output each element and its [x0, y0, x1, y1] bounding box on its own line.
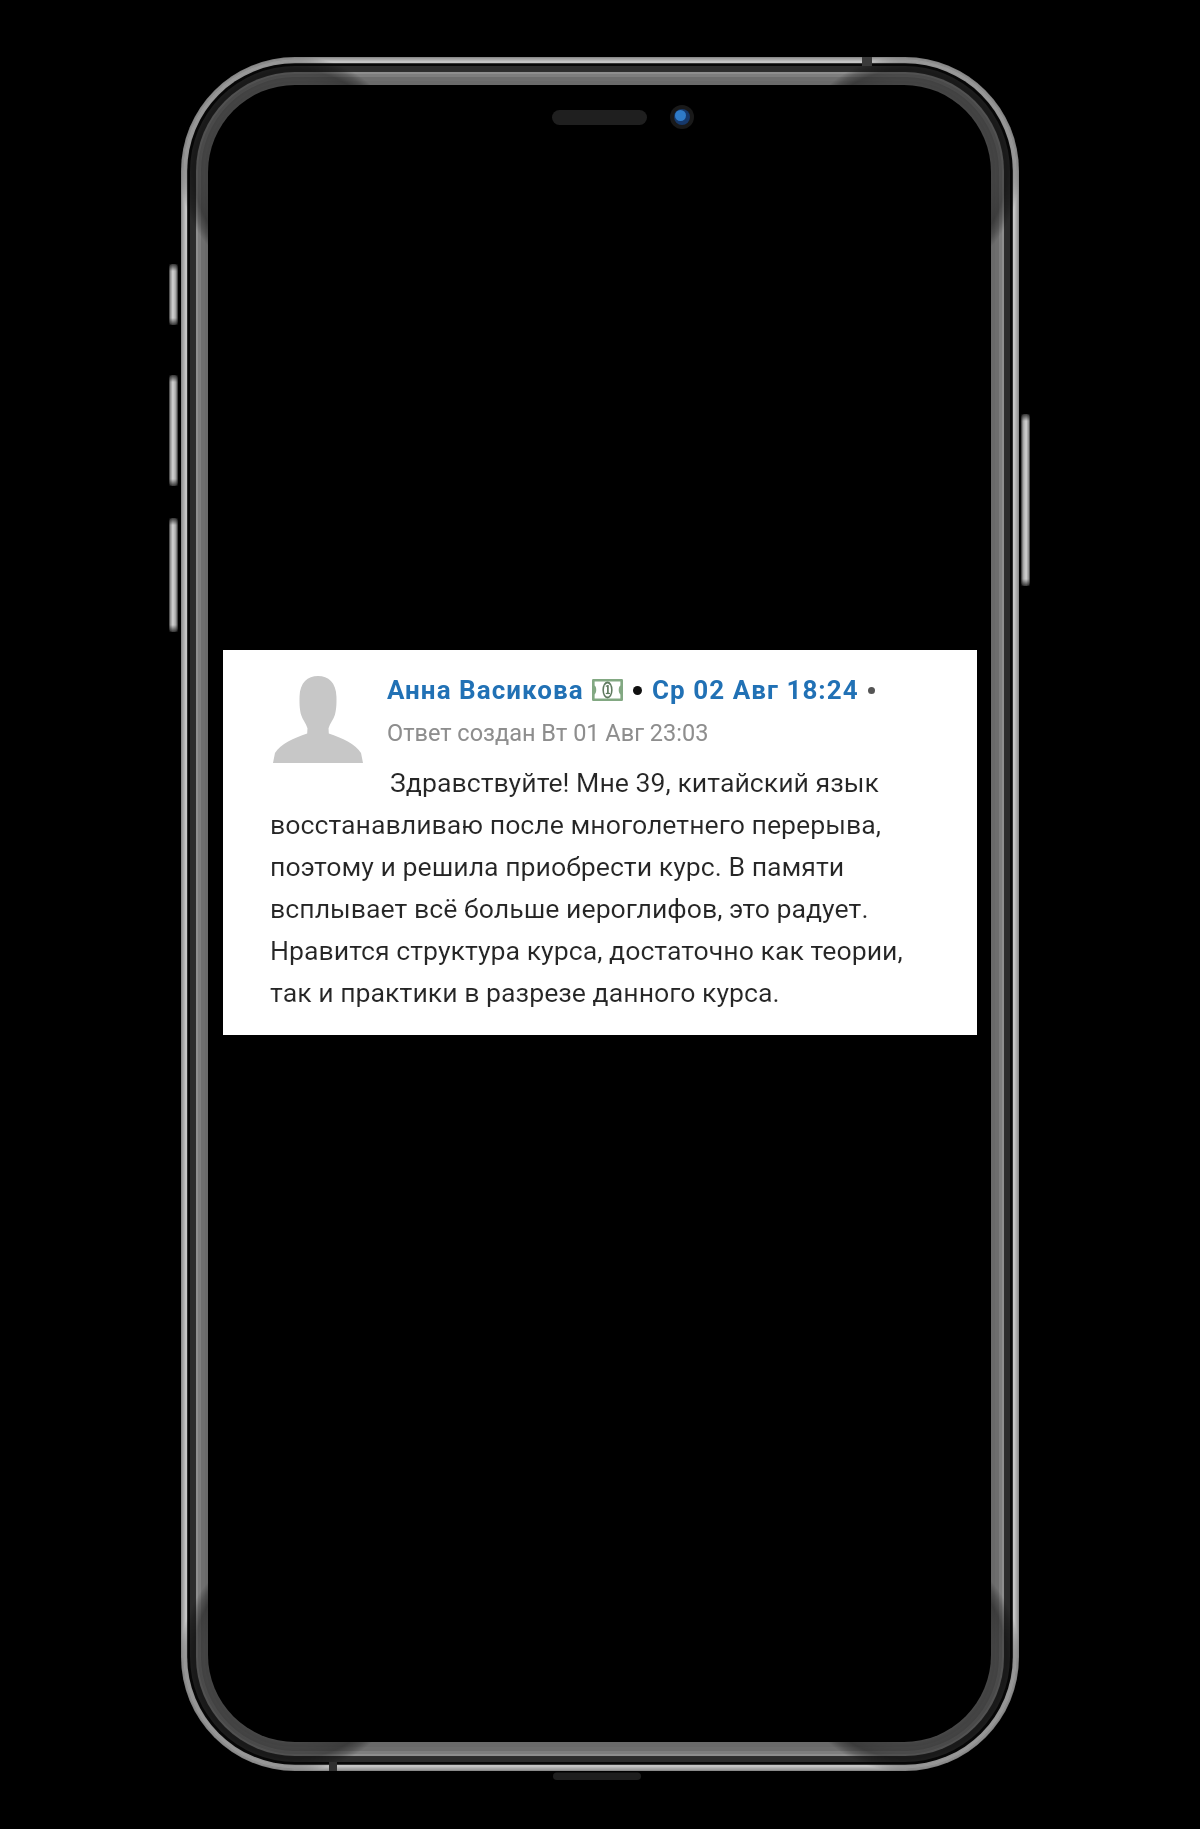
staticText: Ответ создан Вт 01 Авг 23:03: [387, 719, 709, 747]
button[interactable]: Анна Васикова: [223, 650, 977, 1035]
staticText: Анна Васикова: [387, 675, 584, 705]
staticText: Здравствуйте! Мне 39, китайский язык вос…: [270, 759, 930, 1011]
staticText: Ср 02 Авг 18:24: [652, 675, 859, 705]
